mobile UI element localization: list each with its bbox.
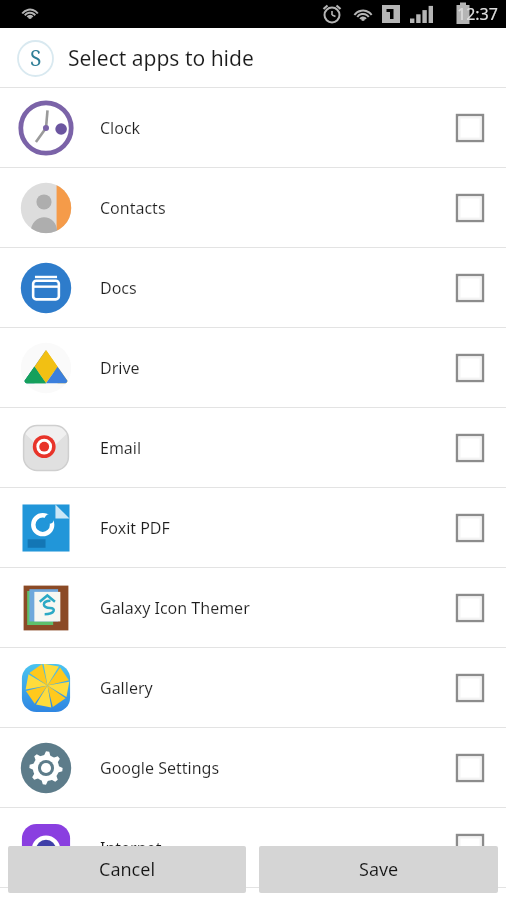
button[interactable]: Contacts xyxy=(0,168,506,248)
button[interactable]: Hide Internet xyxy=(457,835,483,861)
button[interactable]: Foxit PDF xyxy=(0,488,506,568)
button[interactable]: Galaxy Icon Themer xyxy=(0,568,506,648)
button[interactable]: Internet xyxy=(0,808,506,888)
staticText: 12:37 xyxy=(457,3,498,25)
staticText: Save xyxy=(359,857,399,882)
button[interactable]: Cancel xyxy=(8,846,246,893)
button[interactable]: Save xyxy=(259,846,498,893)
staticText: Foxit PDF xyxy=(100,517,457,539)
staticText: Galaxy Icon Themer xyxy=(100,597,457,619)
staticText: Cancel xyxy=(99,857,156,882)
staticText: Select apps to hide xyxy=(68,44,254,73)
staticText: S xyxy=(30,44,42,73)
button[interactable]: Hide Email xyxy=(457,435,483,461)
button[interactable]: Hide Docs xyxy=(457,275,483,301)
staticText: Email xyxy=(100,437,457,459)
staticText: Google Settings xyxy=(100,757,457,779)
button[interactable]: Google Settings xyxy=(0,728,506,808)
button[interactable]: Hide Foxit PDF xyxy=(457,515,483,541)
button[interactable]: Hide Google Settings xyxy=(457,755,483,781)
button[interactable]: Hide Contacts xyxy=(457,195,483,221)
button[interactable]: Docs xyxy=(0,248,506,328)
button[interactable]: Gallery xyxy=(0,648,506,728)
button[interactable]: Hide Drive xyxy=(457,355,483,381)
staticText: Internet xyxy=(100,837,457,859)
button[interactable]: Hide Galaxy Icon Themer xyxy=(457,595,483,621)
button[interactable]: Drive xyxy=(0,328,506,408)
button[interactable]: Email xyxy=(0,408,506,488)
staticText: Docs xyxy=(100,277,457,299)
button[interactable]: Hide Gallery xyxy=(457,675,483,701)
button[interactable]: Clock xyxy=(0,88,506,168)
staticText: Drive xyxy=(100,357,457,379)
staticText: Contacts xyxy=(100,197,457,219)
staticText: Gallery xyxy=(100,677,457,699)
staticText: Clock xyxy=(100,117,457,139)
button[interactable]: Hide Clock xyxy=(457,115,483,141)
